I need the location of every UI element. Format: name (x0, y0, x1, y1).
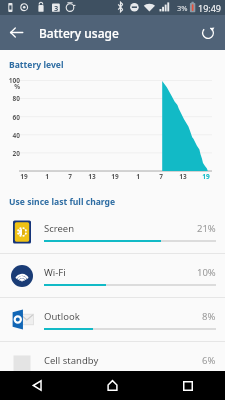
staticText: Use since last full charge (9, 196, 116, 208)
staticText: Wi-Fi (44, 266, 66, 279)
button[interactable]: Cell standby (0, 342, 225, 385)
staticText: 10% (197, 266, 216, 279)
staticText: 19 (200, 172, 212, 181)
staticText: 3 (54, 3, 59, 13)
staticText: Screen (44, 222, 75, 235)
staticText: 20 (4, 149, 20, 158)
staticText: 19:49 (198, 2, 222, 14)
staticText: 6% (202, 354, 216, 367)
button[interactable]: Home (75, 371, 150, 400)
staticText: % (4, 82, 20, 91)
staticText: 8% (202, 310, 216, 323)
staticText: Battery usage (39, 25, 119, 41)
staticText: Battery level (9, 59, 64, 71)
staticText: 80 (4, 94, 20, 103)
button[interactable]: Back (0, 371, 75, 400)
staticText: Cell standby (44, 354, 99, 367)
staticText: 1 (41, 172, 53, 181)
staticText: Outlook (44, 310, 80, 323)
staticText: 19 (109, 172, 121, 181)
button[interactable]: Wi-Fi (0, 254, 225, 297)
staticText: 13 (177, 172, 189, 181)
button[interactable]: Back (0, 16, 33, 49)
staticText: 100 (4, 76, 20, 85)
staticText: 7 (155, 172, 167, 181)
staticText: 7 (64, 172, 76, 181)
staticText: 21% (197, 222, 216, 235)
button[interactable]: Refresh (190, 15, 225, 50)
staticText: 1 (132, 172, 144, 181)
staticText: 3% (177, 3, 188, 13)
staticText: 13 (86, 172, 98, 181)
button[interactable]: Outlook (0, 298, 225, 341)
staticText: 40 (4, 131, 20, 140)
button[interactable]: Recent apps (150, 371, 225, 400)
staticText: 19 (18, 172, 30, 181)
staticText: 60 (4, 113, 20, 122)
button[interactable]: Screen (0, 210, 225, 253)
